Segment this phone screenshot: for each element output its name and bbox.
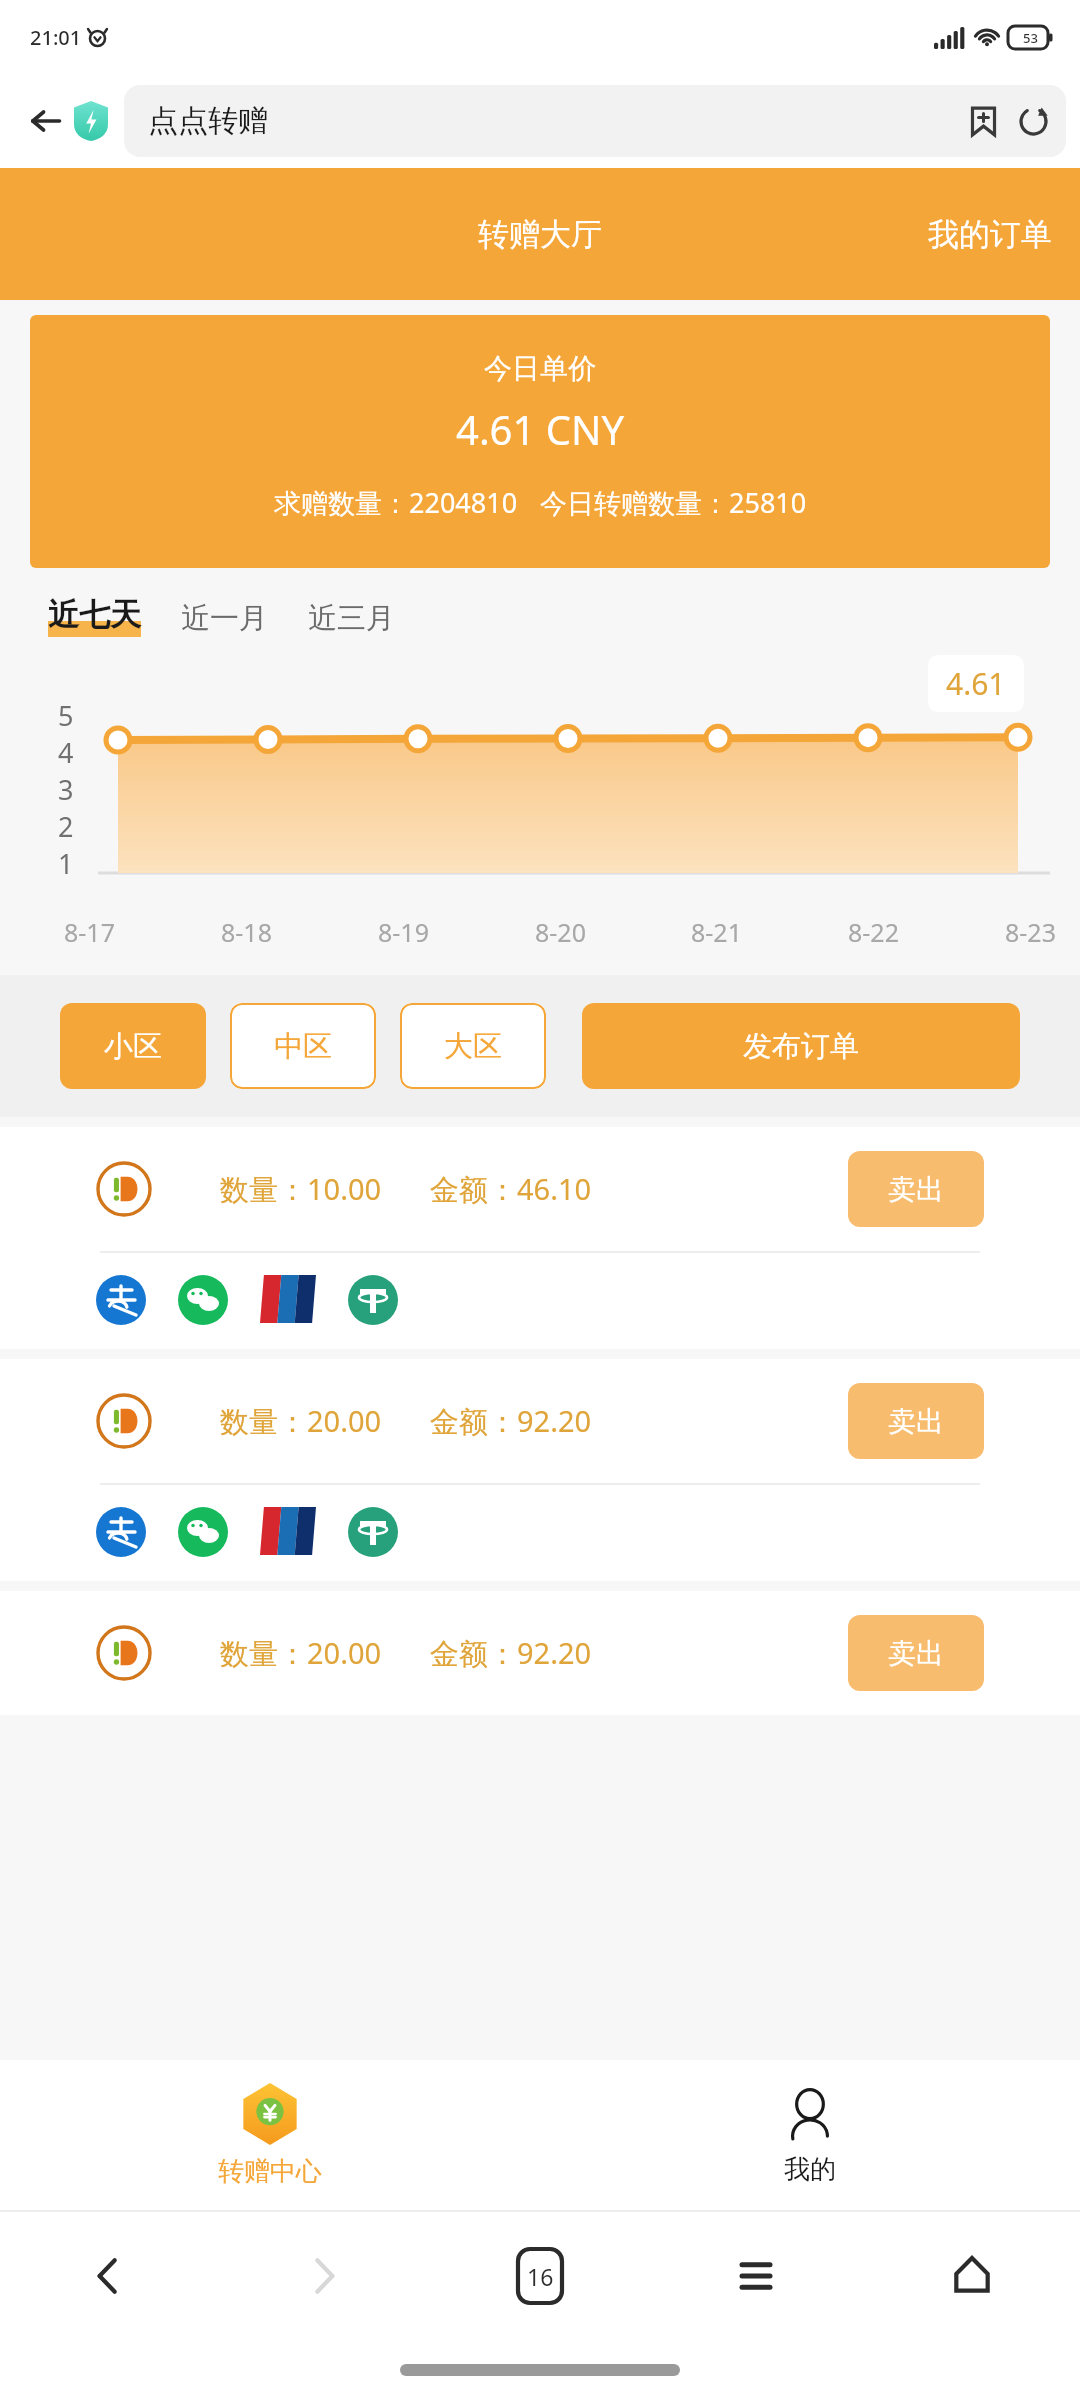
staticText: 近七天 — [48, 595, 141, 634]
staticText: 大区 — [444, 1028, 502, 1065]
staticText: 今日单价 — [484, 351, 596, 386]
button[interactable]: 卖出 — [848, 1383, 984, 1459]
staticText: 数量：20.00 — [220, 1633, 382, 1673]
button[interactable]: 数量：20.00 — [0, 1359, 1080, 1581]
staticText: 今日转赠数量：25810 — [540, 484, 807, 521]
staticText: 16 — [527, 2261, 554, 2292]
staticText: 8-18 — [221, 915, 272, 949]
staticText: 我的 — [784, 2153, 836, 2186]
staticText: 数量：10.00 — [220, 1169, 382, 1209]
button[interactable]: Back — [0, 2212, 216, 2340]
staticText: 4 — [58, 734, 74, 771]
staticText: 8-23 — [1005, 915, 1056, 949]
staticText: 小区 — [104, 1028, 162, 1065]
staticText: 2 — [58, 808, 74, 845]
staticText: 3 — [58, 771, 74, 808]
staticText: 8-20 — [535, 915, 586, 949]
button[interactable]: 转赠大厅 — [478, 215, 602, 254]
staticText: 4.61 — [946, 663, 1006, 704]
button[interactable]: Forward — [216, 2212, 432, 2340]
staticText: 1 — [58, 845, 74, 882]
staticText: 8-21 — [691, 915, 742, 949]
button[interactable]: 数量：20.00 — [0, 1591, 1080, 1715]
staticText: 发布订单 — [743, 1028, 859, 1065]
button[interactable]: 发布订单 — [582, 1003, 1020, 1089]
staticText: 21:01 — [30, 24, 82, 51]
staticText: 53 — [1023, 29, 1038, 47]
button[interactable]: 近三月 — [308, 600, 395, 637]
staticText: 5 — [58, 697, 74, 734]
button[interactable]: Home — [864, 2212, 1080, 2340]
staticText: 金额：92.20 — [430, 1633, 592, 1673]
staticText: 求赠数量：2204810 — [274, 484, 518, 521]
button[interactable]: Back — [18, 93, 74, 149]
staticText: 卖出 — [888, 1172, 944, 1207]
staticText: 转赠中心 — [218, 2155, 322, 2188]
staticText: 4.61 CNY — [456, 402, 625, 456]
button[interactable]: Bookmark — [956, 94, 1010, 148]
button[interactable]: Refresh — [1010, 93, 1056, 149]
button[interactable]: 今日单价 — [30, 315, 1050, 568]
staticText: 中区 — [274, 1028, 332, 1065]
button[interactable]: 大区 — [400, 1003, 546, 1089]
staticText: 卖出 — [888, 1636, 944, 1671]
button[interactable]: 点点转赠 — [124, 85, 1066, 157]
staticText: 8-19 — [378, 915, 429, 949]
staticText: 卖出 — [888, 1404, 944, 1439]
staticText: 8-22 — [848, 915, 899, 949]
button[interactable]: 卖出 — [848, 1151, 984, 1227]
button[interactable]: 近七天 — [48, 595, 141, 637]
button[interactable]: 中区 — [230, 1003, 376, 1089]
button[interactable]: Menu — [648, 2212, 864, 2340]
staticText: 数量：20.00 — [220, 1401, 382, 1441]
staticText: 8-17 — [64, 915, 115, 949]
staticText: 金额：46.10 — [430, 1169, 592, 1209]
button[interactable]: 我的订单 — [928, 215, 1052, 254]
button[interactable]: 转赠中心 — [0, 2060, 540, 2210]
button[interactable]: 小区 — [60, 1003, 206, 1089]
staticText: 金额：92.20 — [430, 1401, 592, 1441]
staticText: 点点转赠 — [148, 102, 956, 140]
button[interactable]: 我的 — [540, 2060, 1080, 2210]
button[interactable]: 近一月 — [181, 600, 268, 637]
button[interactable]: 数量：10.00 — [0, 1127, 1080, 1349]
button[interactable]: Tabs — [432, 2212, 648, 2340]
button[interactable]: 卖出 — [848, 1615, 984, 1691]
